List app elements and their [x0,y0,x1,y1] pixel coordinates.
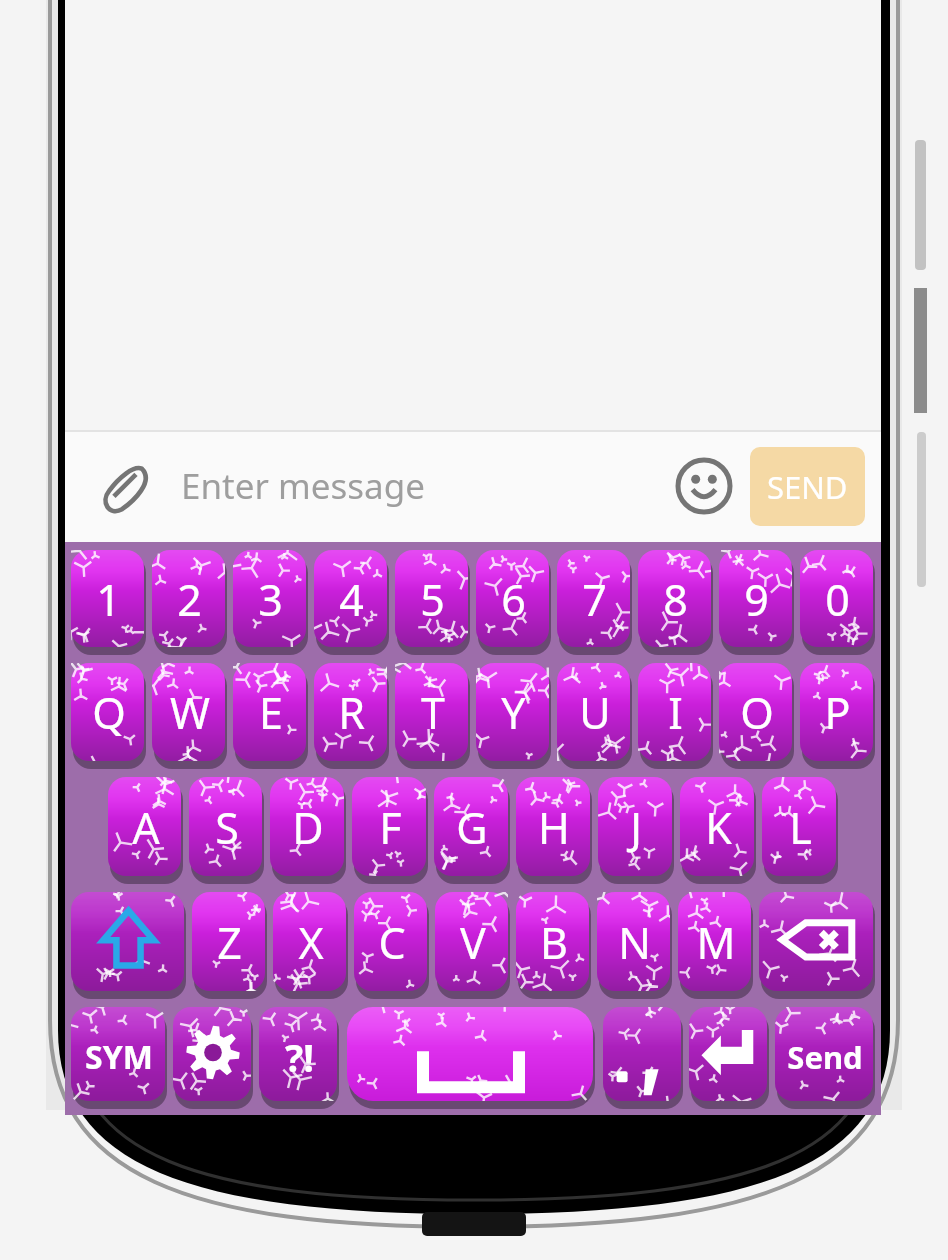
staticText: 1 [96,570,121,629]
staticText: O [740,683,774,742]
button[interactable]: J [598,777,674,881]
button[interactable]: B [516,892,591,996]
staticText: 4 [339,570,364,629]
staticText: Q [92,683,126,742]
staticText: G [456,798,488,857]
button[interactable]: 7 [557,550,632,652]
staticText: 2 [177,570,202,629]
button[interactable]: X [273,892,348,996]
button[interactable]: Q [71,663,146,766]
staticText: T [421,683,445,742]
button[interactable]: 1 [71,550,146,652]
staticText: W [170,683,210,742]
staticText: N [618,913,651,972]
staticText: P [824,683,851,742]
button[interactable]: O [719,663,794,766]
button[interactable]: S [189,777,264,881]
button[interactable]: E [233,663,308,766]
staticText: 5 [420,570,445,629]
staticText: H [538,798,570,857]
staticText: X [298,913,324,972]
button[interactable]: Enter [689,1007,769,1106]
button[interactable]: Attach file [91,448,167,524]
staticText: L [789,798,812,857]
button[interactable]: L [762,777,838,881]
staticText: 0 [825,570,850,629]
button[interactable]: Send [775,1007,875,1106]
button[interactable]: F [352,777,428,881]
button[interactable]: Space [347,1007,595,1106]
staticText: Y [501,683,526,742]
button[interactable]: W [152,663,227,766]
staticText: Enter message [181,462,668,510]
staticText: J [630,798,642,857]
staticText: Send [787,1036,863,1078]
button[interactable]: M [678,892,753,996]
staticText: E [259,683,283,742]
button[interactable]: 3 [233,550,308,652]
staticText: D [292,798,324,857]
button[interactable]: Shift [71,892,186,996]
staticText: I [668,683,683,742]
button[interactable]: Comma [603,1007,683,1106]
button[interactable]: D [270,777,346,881]
button[interactable]: G [434,777,510,881]
staticText: Z [217,913,242,972]
staticText: ?! [285,1031,314,1083]
staticText: M [696,913,736,972]
button[interactable]: 6 [476,550,551,652]
button[interactable]: 5 [395,550,470,652]
button[interactable]: Emoji [668,450,740,522]
button[interactable]: SYM [71,1007,167,1106]
button[interactable]: SEND [750,447,865,526]
staticText: C [378,913,406,972]
button[interactable]: 4 [314,550,389,652]
staticText: SEND [767,466,848,508]
staticText: B [540,913,568,972]
button[interactable]: A [108,777,183,881]
staticText: S [215,798,239,857]
staticText: U [579,683,611,742]
button[interactable]: T [395,663,470,766]
staticText: V [460,913,486,972]
button[interactable]: Y [476,663,551,766]
button[interactable]: ?! [259,1007,339,1106]
button[interactable]: 2 [152,550,227,652]
button[interactable]: 9 [719,550,794,652]
staticText: K [705,798,732,857]
button[interactable]: I [638,663,713,766]
button[interactable]: C [354,892,429,996]
button[interactable]: U [557,663,632,766]
staticText: A [132,798,160,857]
button[interactable]: N [597,892,672,996]
button[interactable]: K [680,777,756,881]
button[interactable]: V [435,892,510,996]
staticText: 3 [258,570,283,629]
button[interactable]: R [314,663,389,766]
staticText: SYM [85,1035,153,1079]
button[interactable]: 8 [638,550,713,652]
button[interactable]: P [800,663,875,766]
button[interactable]: Backspace [759,892,875,996]
staticText: R [338,683,365,742]
button[interactable]: H [516,777,592,881]
button[interactable]: 0 [800,550,875,652]
staticText: 9 [744,570,769,629]
staticText: 6 [501,570,526,629]
button[interactable]: Settings [173,1007,253,1106]
button[interactable]: Z [192,892,267,996]
staticText: F [379,798,402,857]
staticText: 7 [582,570,607,629]
staticText: 8 [663,570,688,629]
